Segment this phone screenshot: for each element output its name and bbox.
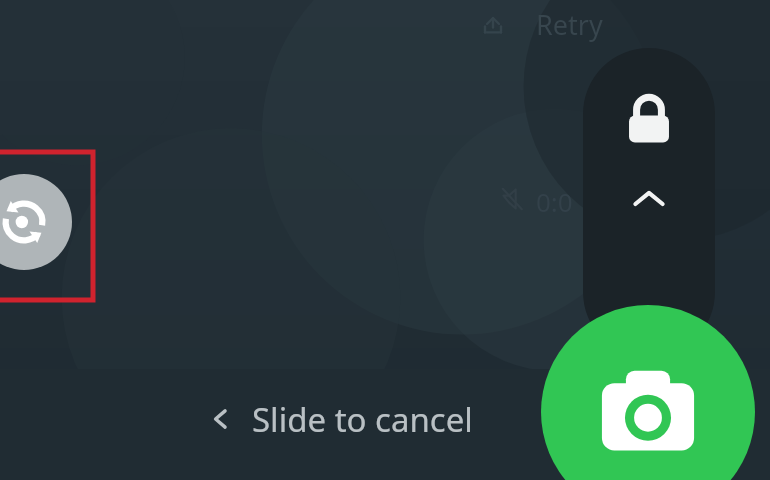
staticText: 0:0 [536, 184, 573, 219]
button[interactable]: Slide to cancel [196, 388, 526, 450]
button[interactable]: Lock recording [583, 48, 715, 358]
button[interactable]: Switch camera [0, 174, 72, 270]
button[interactable]: Retry [474, 2, 644, 46]
button[interactable]: Capture photo [541, 305, 755, 480]
staticText: Slide to cancel [252, 397, 473, 442]
staticText: Retry [536, 6, 603, 43]
